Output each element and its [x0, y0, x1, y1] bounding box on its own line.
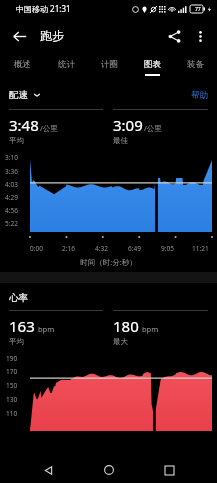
staticText: 跑步 — [40, 28, 64, 43]
staticText: 0:00 — [30, 244, 43, 253]
button[interactable]: Back — [35, 457, 61, 483]
staticText: 150 — [6, 381, 18, 390]
staticText: 130 — [6, 395, 18, 404]
staticText: 4:56 — [5, 206, 18, 215]
staticText: 77 — [195, 6, 201, 13]
staticText: 平均 — [9, 136, 24, 145]
staticText: 11:21 — [192, 244, 209, 253]
button[interactable]: 配速 — [9, 89, 41, 101]
staticText: 9:05 — [161, 244, 174, 253]
staticText: 概述 — [14, 59, 31, 70]
staticText: 装备 — [187, 59, 204, 70]
staticText: 3:10 — [5, 153, 18, 162]
staticText: 心率 — [9, 292, 28, 304]
staticText: 3:09 — [113, 115, 143, 135]
staticText: /公里 — [40, 123, 58, 133]
staticText: 4:29 — [5, 193, 18, 202]
button[interactable]: 帮助 — [191, 90, 208, 101]
staticText: 170 — [6, 367, 18, 376]
button[interactable]: More options — [187, 23, 213, 49]
staticText: 6:49 — [128, 244, 141, 253]
button[interactable]: 图表 — [131, 54, 174, 80]
staticText: 163 — [9, 316, 35, 336]
button[interactable]: Share — [161, 23, 187, 49]
staticText: 5:22 — [5, 219, 18, 228]
staticText: 帮助 — [191, 90, 208, 101]
staticText: bpm — [140, 324, 159, 334]
button[interactable]: Home — [96, 457, 122, 483]
staticText: 4:03 — [5, 180, 18, 189]
staticText: 时间（时:分:秒） — [0, 257, 217, 267]
staticText: 最佳 — [113, 136, 128, 145]
staticText: 图表 — [144, 59, 161, 70]
button[interactable]: 计圈 — [88, 54, 131, 80]
button[interactable]: 概述 — [0, 54, 44, 80]
button[interactable]: 统计 — [44, 54, 88, 80]
staticText: 配速 — [9, 89, 28, 101]
staticText: 平均 — [9, 337, 24, 346]
staticText: 计圈 — [101, 59, 118, 70]
staticText: 3:48 — [9, 115, 39, 135]
staticText: 180 — [113, 316, 139, 336]
staticText: /公里 — [144, 123, 162, 133]
staticText: 190 — [6, 354, 18, 363]
staticText: 最大 — [113, 337, 128, 346]
button[interactable]: Recents — [156, 457, 182, 483]
button[interactable]: 装备 — [174, 54, 217, 80]
staticText: 中国移动 21:31 — [16, 3, 71, 14]
staticText: 2:16 — [62, 244, 75, 253]
staticText: 统计 — [58, 59, 75, 70]
staticText: 4:32 — [95, 244, 108, 253]
staticText: 110 — [6, 409, 18, 418]
staticText: 3:36 — [5, 167, 18, 176]
button[interactable]: Back — [6, 23, 32, 49]
staticText: bpm — [36, 324, 55, 334]
